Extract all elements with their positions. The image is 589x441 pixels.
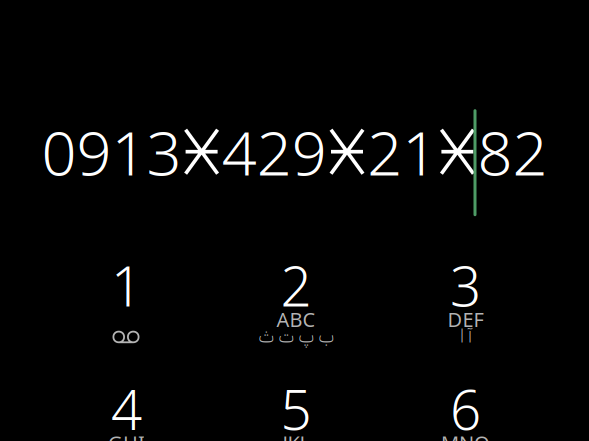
button[interactable]: 4 GHI — [42, 383, 211, 441]
staticText: 5 — [280, 371, 311, 441]
staticText: GHI — [108, 429, 145, 441]
staticText: 21 — [367, 110, 437, 193]
staticText: 0913 — [41, 110, 181, 193]
staticText: 3 — [450, 248, 481, 322]
staticText: 2 — [280, 248, 311, 322]
button[interactable]: 2 ABC — [211, 259, 381, 383]
button[interactable]: 3 DEF — [381, 259, 550, 383]
button[interactable]: 5 JKL — [211, 383, 381, 441]
staticText: ب پ ت ث — [258, 322, 334, 350]
staticText: 429 — [222, 110, 327, 193]
staticText: ABC — [276, 306, 315, 333]
staticText: MNO — [441, 429, 490, 441]
staticText: DEF — [447, 306, 483, 333]
button[interactable]: 6 MNO — [381, 383, 550, 441]
staticText: JKL — [282, 429, 309, 441]
button[interactable]: 1 Voicemail — [42, 259, 211, 383]
staticText: 6 — [450, 371, 481, 441]
staticText: 1 — [111, 248, 142, 322]
staticText: آ ا — [459, 322, 471, 350]
staticText: 82 — [478, 110, 548, 193]
staticText: 4 — [111, 371, 142, 441]
